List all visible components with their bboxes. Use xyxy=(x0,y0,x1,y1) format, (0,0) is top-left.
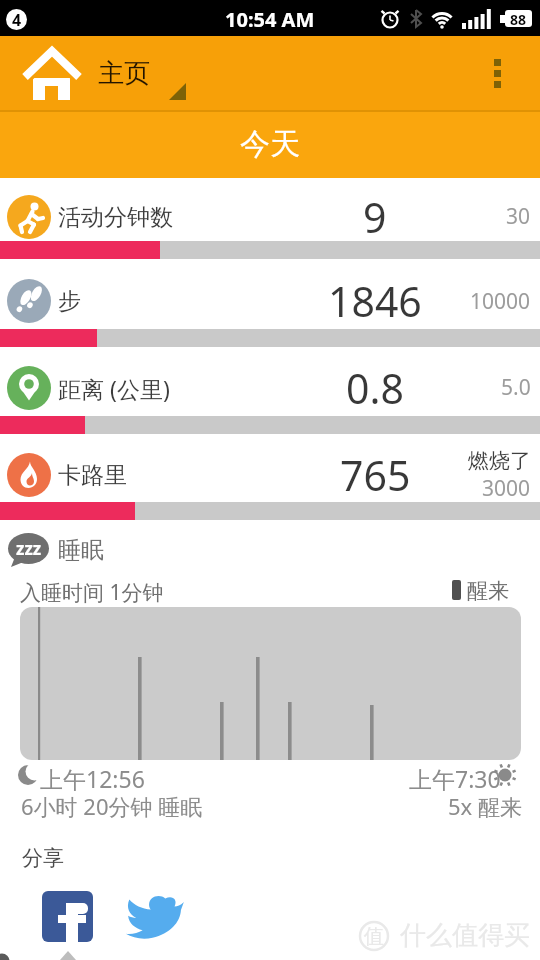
staticText: 值 xyxy=(364,924,384,949)
button[interactable] xyxy=(42,891,93,942)
button[interactable] xyxy=(127,895,185,939)
staticText: 距离 (公里) xyxy=(58,373,170,404)
staticText: 4 xyxy=(12,9,22,30)
staticText: 0.8 xyxy=(346,360,404,416)
staticText: 今天 xyxy=(240,125,300,163)
button[interactable]: 距离 (公里) xyxy=(0,347,540,434)
staticText: 分享 xyxy=(22,845,64,871)
staticText: 活动分钟数 xyxy=(58,203,173,232)
staticText: 什么值得买 xyxy=(400,919,530,952)
staticText: 上午7:30 xyxy=(409,763,501,794)
staticText: 88 xyxy=(510,10,527,27)
staticText: 卡路里 xyxy=(58,461,127,490)
button[interactable]: 步 xyxy=(0,259,540,347)
staticText: 9 xyxy=(363,189,387,245)
button[interactable] xyxy=(494,59,501,88)
staticText: 30 xyxy=(506,202,531,231)
staticText: 6小时 20分钟 睡眠 xyxy=(21,791,203,821)
staticText: 5.0 xyxy=(501,373,531,402)
button[interactable] xyxy=(24,46,80,102)
staticText: zzz xyxy=(16,537,42,560)
staticText: 入睡时间 1分钟 xyxy=(20,578,164,607)
staticText: 燃烧了 xyxy=(468,448,531,474)
staticText: 5x 醒来 xyxy=(448,791,522,821)
button[interactable]: zzz xyxy=(8,533,104,567)
staticText: 主页 xyxy=(98,57,150,90)
staticText: 765 xyxy=(340,447,411,503)
staticText: 10:54 AM xyxy=(225,6,315,33)
staticText: 睡眠 xyxy=(58,536,104,565)
staticText: 步 xyxy=(58,287,81,316)
staticText: 醒来 xyxy=(467,578,509,604)
staticText: 上午12:56 xyxy=(40,763,145,794)
staticText: 3000 xyxy=(482,474,531,503)
staticText: 1846 xyxy=(328,273,422,329)
button[interactable]: 卡路里 xyxy=(0,434,540,520)
button[interactable]: 活动分钟数 xyxy=(0,178,540,259)
button[interactable]: 主页 xyxy=(98,36,186,110)
staticText: 10000 xyxy=(470,287,531,316)
